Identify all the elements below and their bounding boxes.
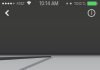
staticText: 10:14 AM — [39, 1, 58, 6]
staticText: AT&T — [16, 1, 25, 6]
button[interactable]: Back — [0, 7, 15, 19]
staticText: 100% — [74, 1, 86, 6]
button[interactable]: Info — [83, 7, 100, 19]
staticText: i — [91, 10, 92, 16]
